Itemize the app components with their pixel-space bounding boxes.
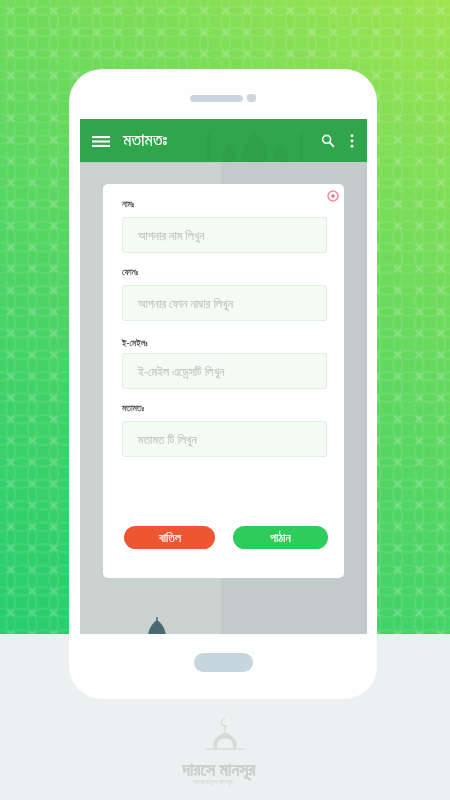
staticText: বাতিল xyxy=(159,532,181,544)
button[interactable]: Close xyxy=(325,188,341,204)
button[interactable]: পাঠান xyxy=(233,526,328,549)
staticText: মতামতঃ xyxy=(122,404,145,413)
staticText: দারসে মানসূর xyxy=(182,757,256,782)
staticText: মতামত টি লিখুন xyxy=(138,431,197,447)
button[interactable]: আপনার নাম লিখুন xyxy=(122,217,327,253)
staticText: মাদরাসাতুল মানসূর xyxy=(193,777,233,787)
button[interactable]: ই-মেইল এড্রেসটি লিখুন xyxy=(122,353,327,389)
button[interactable]: আপনার ফোন নাম্বার লিখুন xyxy=(122,285,327,321)
staticText: আপনার ফোন নাম্বার লিখুন xyxy=(138,295,233,311)
staticText: মতামতঃ xyxy=(123,132,168,150)
staticText: নামঃ xyxy=(122,200,135,209)
button[interactable]: মতামত টি লিখুন xyxy=(122,421,327,457)
button[interactable]: Open navigation menu xyxy=(87,127,115,155)
staticText: ই-মেইলঃ xyxy=(122,336,148,348)
staticText: ফোনঃ xyxy=(122,268,139,277)
button[interactable]: Search xyxy=(315,128,341,154)
button[interactable]: More options xyxy=(341,130,363,152)
button[interactable]: বাতিল xyxy=(124,526,215,549)
staticText: পাঠান xyxy=(270,532,291,544)
staticText: আপনার নাম লিখুন xyxy=(138,227,205,243)
staticText: ই-মেইল এড্রেসটি লিখুন xyxy=(138,363,225,379)
